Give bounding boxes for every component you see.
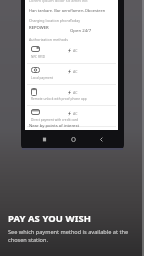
button[interactable]: Recent apps	[38, 133, 50, 145]
staticText: Han tankare. Bar aeroflamen-Oboesteen	[29, 8, 106, 13]
staticText: Remote unlock with proof phone app	[31, 97, 87, 101]
staticText: Open 24/7	[70, 27, 92, 33]
button[interactable]: Direct payment with credit card	[25, 106, 118, 127]
button[interactable]: Remote unlock with proof phone app	[25, 85, 118, 106]
staticText: NFC RFID	[31, 55, 45, 59]
staticText: AC	[73, 69, 78, 74]
button[interactable]: Back	[95, 133, 107, 145]
staticText: AC	[73, 111, 78, 116]
button[interactable]: Home	[67, 133, 79, 145]
staticText: PAY AS YOU WISH	[8, 212, 91, 225]
staticText: Today	[70, 18, 80, 23]
staticText: Authorization methods	[29, 37, 68, 42]
staticText: REPOWER	[29, 25, 49, 31]
staticText: Charging location phone	[29, 18, 71, 23]
staticText: See which payment method is available at…	[8, 228, 130, 244]
button[interactable]: NFC RFID	[25, 43, 118, 64]
staticText: Near by points of interest	[29, 123, 79, 129]
staticText: Local payment	[31, 76, 53, 80]
staticText: Lorem ipsum dolor sit amet elit	[29, 0, 88, 3]
button[interactable]: Local payment	[25, 64, 118, 85]
staticText: Direct payment with credit card	[31, 118, 78, 122]
staticText: AC	[73, 90, 78, 95]
staticText: AC	[73, 48, 78, 53]
